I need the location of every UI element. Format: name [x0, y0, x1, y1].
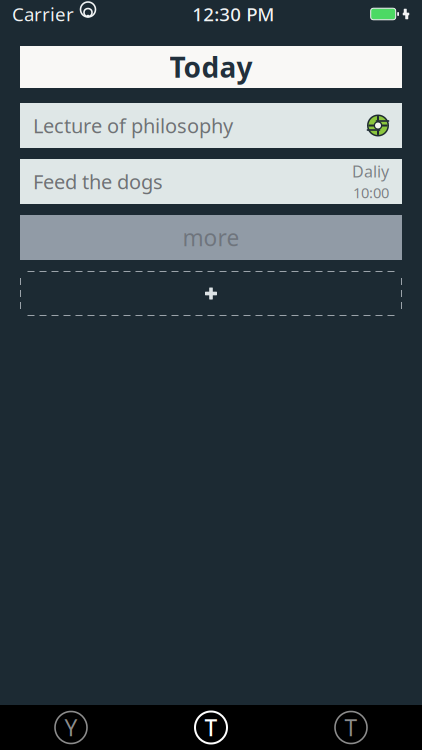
staticText: Today [169, 48, 252, 86]
staticText: T [344, 712, 357, 742]
staticText: 10:00 [353, 183, 389, 202]
button[interactable]: Feed the dogs [20, 159, 402, 204]
staticText: Lecture of philosophy [33, 112, 233, 139]
button[interactable]: Today [141, 705, 281, 750]
staticText: Y [64, 712, 77, 742]
staticText: T [204, 712, 217, 742]
button[interactable]: Yesterday [1, 705, 141, 750]
staticText: Carrier [12, 2, 74, 26]
staticText: Feed the dogs [33, 168, 163, 195]
staticText: 12:30 PM [192, 2, 274, 26]
button[interactable]: Lecture of philosophy [20, 103, 402, 148]
staticText: more [182, 222, 239, 252]
button[interactable]: more [20, 215, 402, 260]
button[interactable]: Add task [20, 271, 402, 316]
button[interactable]: Today [20, 46, 402, 88]
staticText: Daliy [352, 161, 389, 182]
button[interactable]: Tomorrow [281, 705, 421, 750]
